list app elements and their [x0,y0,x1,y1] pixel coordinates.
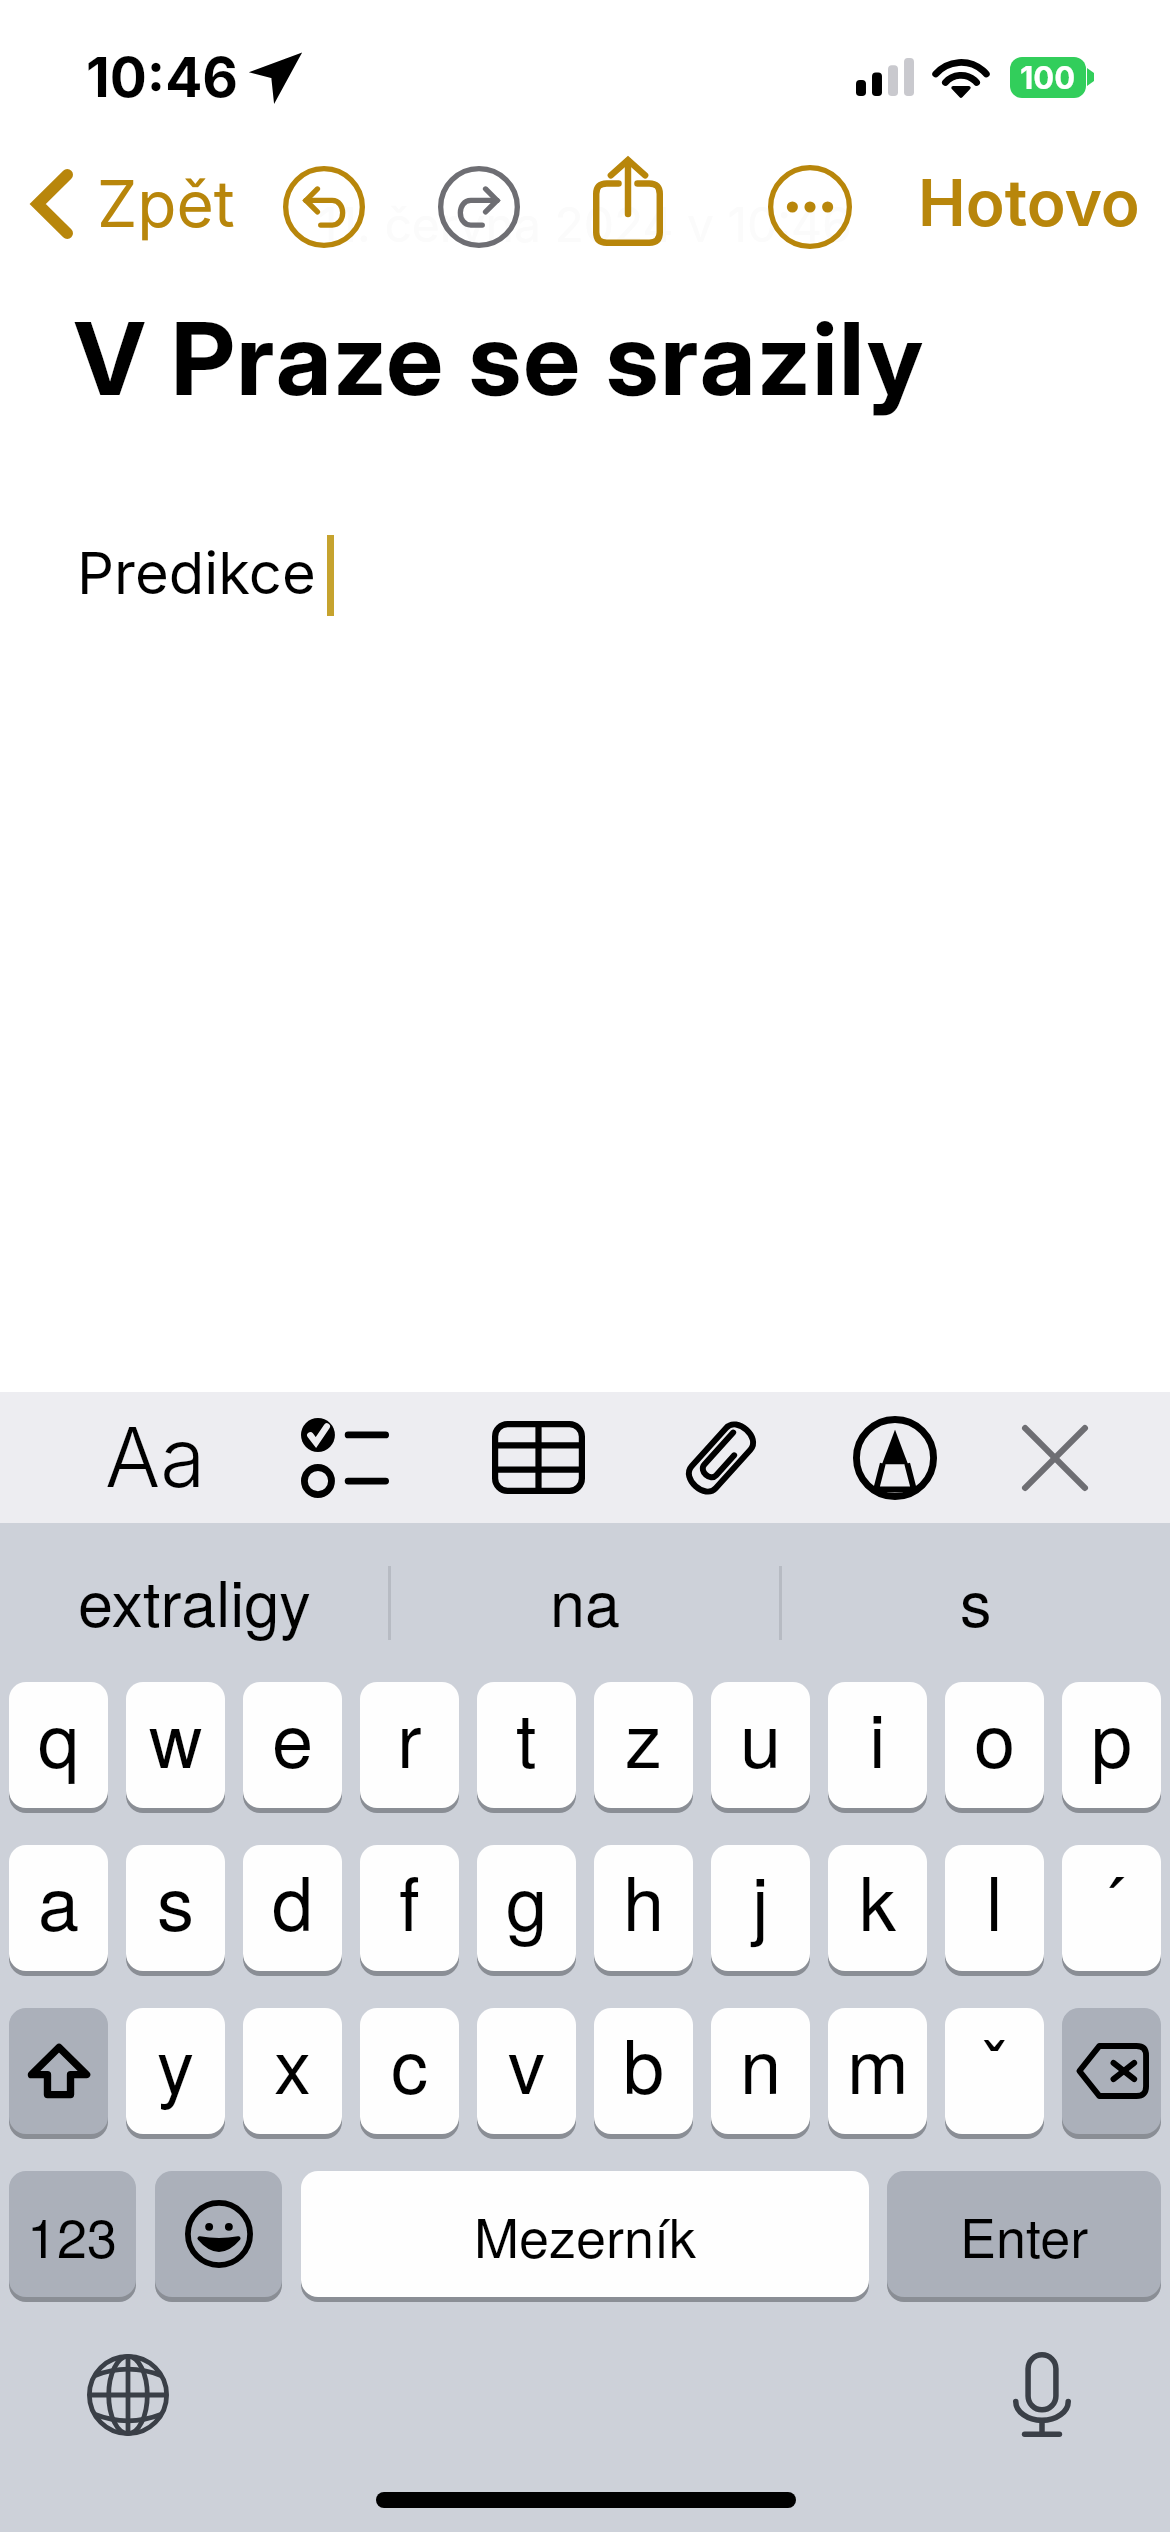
staticText: l [986,1846,1003,1952]
staticText: 10:46 [86,44,239,111]
button[interactable]: i [828,1682,927,1808]
staticText: a [38,1846,80,1952]
button[interactable]: k [828,1845,927,1971]
button[interactable]: Numbers [9,2171,136,2297]
button[interactable]: h [594,1845,693,1971]
button[interactable]: p [1062,1682,1161,1808]
button[interactable]: m [828,2008,927,2134]
button[interactable]: a [9,1845,108,1971]
staticText: h [623,1846,665,1952]
button[interactable]: Redo [427,155,531,259]
button[interactable]: j [711,1845,810,1971]
staticText: Aa [105,1408,206,1507]
button[interactable]: Share [576,146,680,256]
staticText: d [272,1846,314,1952]
button[interactable]: Close keyboard [995,1392,1115,1523]
button[interactable]: ´ [1062,1845,1161,1971]
staticText: c [391,2009,428,2115]
button[interactable]: Zpět [16,153,249,254]
button[interactable]: g [477,1845,576,1971]
staticText: i [869,1683,886,1789]
staticText: v [508,2009,545,2115]
button[interactable]: l [945,1845,1044,1971]
button[interactable]: Enter [887,2171,1161,2297]
staticText: p [1091,1683,1133,1789]
staticText: j [752,1846,769,1952]
button[interactable]: Attach file [661,1392,781,1523]
button[interactable]: f [360,1845,459,1971]
staticText: Enter [960,2196,1089,2273]
button[interactable]: na [391,1523,779,1682]
staticText: Hotovo [918,164,1140,241]
staticText: r [397,1683,422,1789]
button[interactable]: n [711,2008,810,2134]
button[interactable]: Dictation [994,2347,1090,2443]
staticText: extraligy [78,1555,311,1645]
staticText: ˇ [982,2009,1007,2115]
button[interactable]: w [126,1682,225,1808]
staticText: s [960,1555,992,1645]
staticText: o [974,1683,1016,1789]
button[interactable]: o [945,1682,1044,1808]
button[interactable]: c [360,2008,459,2134]
staticText: w [149,1683,203,1789]
staticText: 123 [27,2196,118,2273]
staticText: m [847,2009,909,2115]
button[interactable]: b [594,2008,693,2134]
button[interactable]: y [126,2008,225,2134]
button[interactable]: d [243,1845,342,1971]
button[interactable]: r [360,1682,459,1808]
button[interactable]: extraligy [0,1523,388,1682]
button[interactable]: t [477,1682,576,1808]
staticText: y [157,2009,194,2115]
button[interactable]: Table [478,1392,598,1523]
button[interactable]: z [594,1682,693,1808]
button[interactable]: Markup [835,1392,955,1523]
staticText: Mezerník [474,2196,697,2273]
staticText: 11. června 2024 v 10:46 [318,195,852,253]
button[interactable]: s [126,1845,225,1971]
staticText: u [740,1683,782,1789]
button[interactable]: Switch language [80,2347,176,2443]
button[interactable]: Checklist [285,1392,405,1523]
staticText: q [38,1683,80,1789]
button[interactable]: u [711,1682,810,1808]
staticText: 100 [1020,59,1076,97]
button[interactable]: x [243,2008,342,2134]
button[interactable]: v [477,2008,576,2134]
staticText: f [399,1846,420,1952]
staticText: Predikce [77,538,316,608]
button[interactable]: s [782,1523,1170,1682]
staticText: Zpět [97,165,235,242]
staticText: z [625,1683,662,1789]
staticText: n [740,2009,782,2115]
staticText: t [516,1683,537,1789]
button[interactable]: More options [758,155,862,259]
button[interactable]: ˇ [945,2008,1044,2134]
button[interactable]: Text format [78,1392,233,1523]
button[interactable]: Emoji [155,2171,282,2297]
button[interactable]: Hotovo [902,152,1164,253]
staticText: V Praze se srazily [74,297,925,419]
staticText: na [550,1555,621,1645]
button[interactable]: Mezerník [301,2171,869,2297]
staticText: ´ [1099,1846,1124,1952]
button[interactable]: e [243,1682,342,1808]
staticText: e [272,1683,314,1789]
button[interactable]: Undo [272,155,376,259]
button[interactable]: Shift [9,2008,108,2134]
staticText: b [623,2009,665,2115]
staticText: x [274,2009,311,2115]
staticText: s [157,1846,194,1952]
button[interactable]: q [9,1682,108,1808]
staticText: g [506,1846,548,1952]
button[interactable]: Backspace [1062,2008,1161,2134]
staticText: k [859,1846,896,1952]
